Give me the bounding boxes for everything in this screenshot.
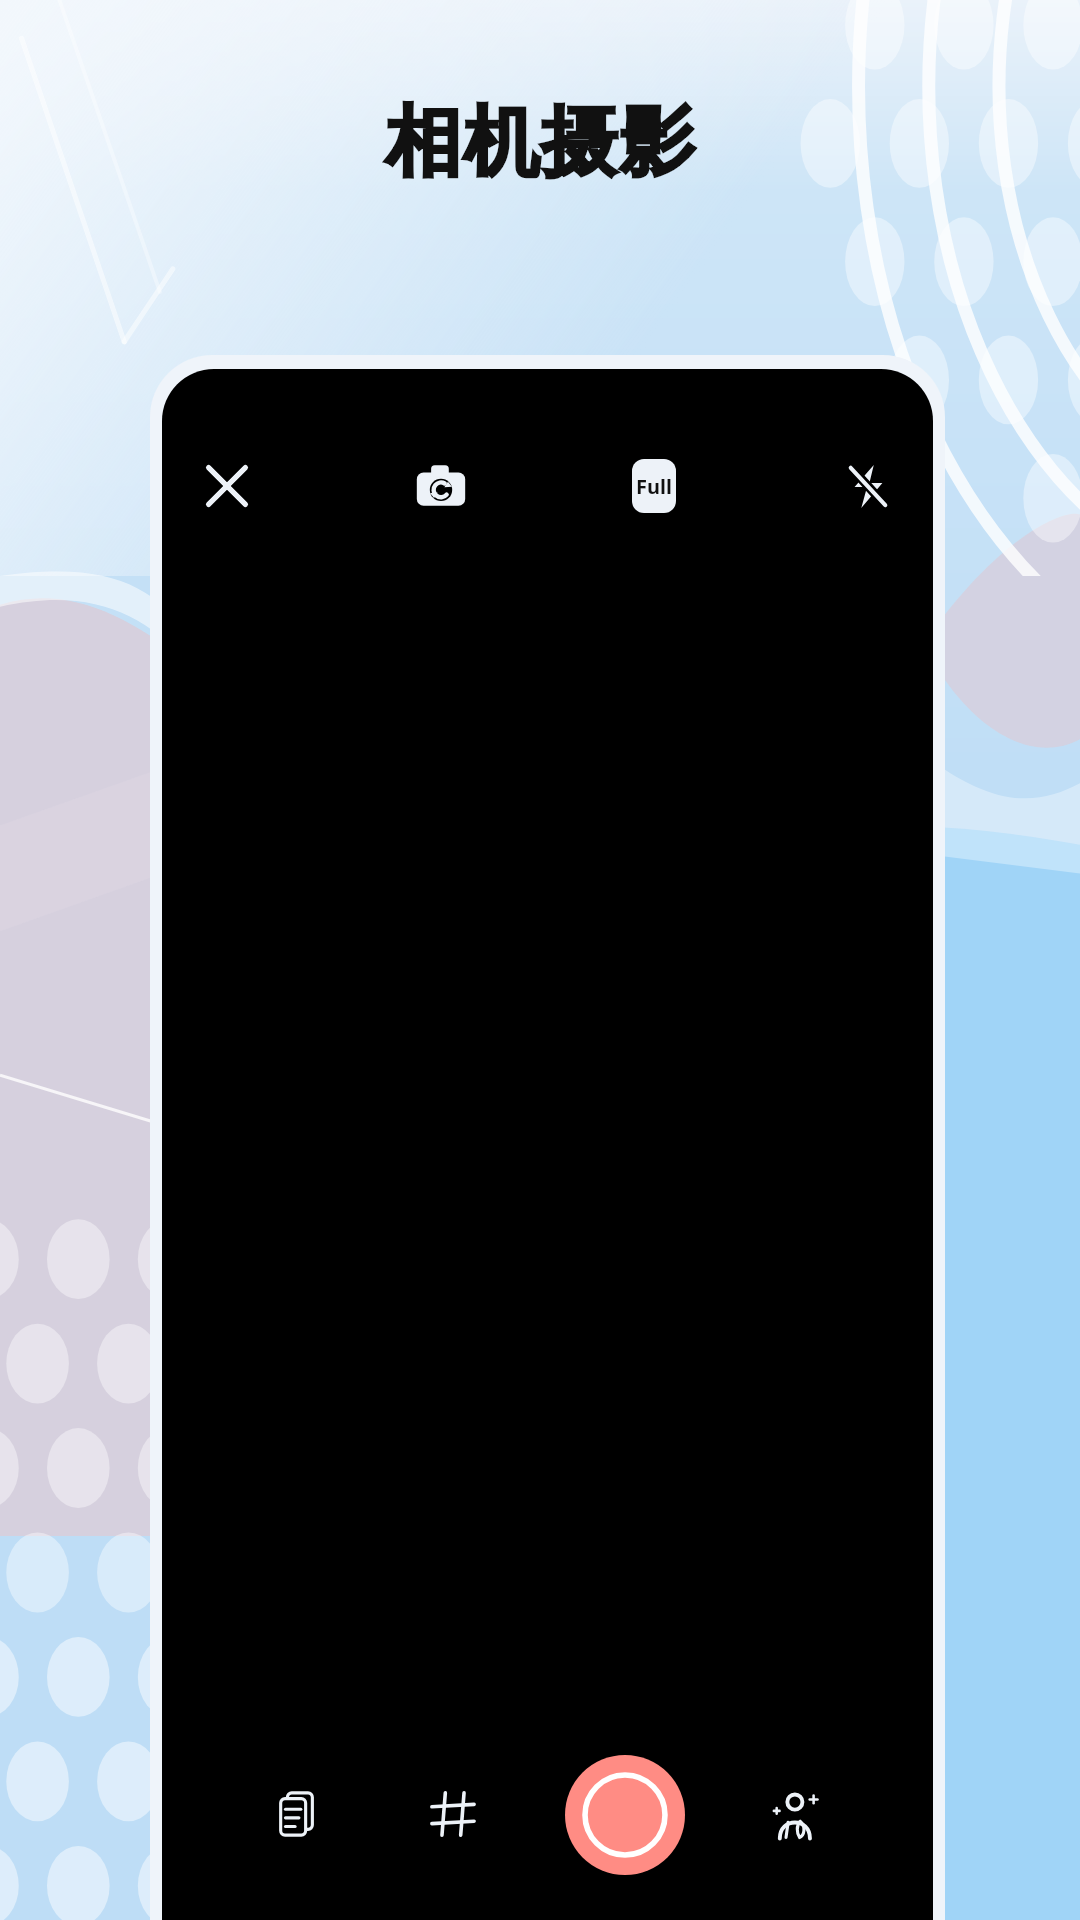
button[interactable]: Templates (254, 1771, 340, 1857)
staticText: Full (636, 473, 672, 500)
button[interactable]: Shutter (565, 1755, 685, 1875)
button[interactable]: Aspect ratio Full (615, 447, 693, 525)
button[interactable]: Beauty (755, 1771, 841, 1857)
button[interactable]: Switch camera (402, 447, 480, 525)
button[interactable]: Close (188, 447, 266, 525)
button[interactable]: Flash off (829, 447, 907, 525)
button[interactable]: Grid lines (410, 1771, 496, 1857)
staticText: 相机摄影 (384, 95, 696, 191)
